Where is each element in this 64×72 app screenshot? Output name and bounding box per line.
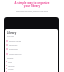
staticText: Shared with me: [9, 53, 22, 55]
staticText: PLAYLISTS: [7, 35, 15, 37]
staticText: Favourites: [9, 44, 18, 46]
button[interactable]: Recently added: [6, 39, 58, 42]
button[interactable]: Trash: [6, 70, 58, 72]
staticText: Downloads: [9, 48, 18, 50]
staticText: Personal: [8, 65, 15, 67]
staticText: FOLDERS: [7, 57, 14, 59]
staticText: Library: [7, 31, 17, 35]
button[interactable]: Personal: [6, 64, 58, 67]
staticText: Archive: [8, 68, 14, 70]
staticText: A simple way to organize: [0, 1, 64, 5]
staticText: Recently added: [9, 40, 22, 42]
button[interactable]: Favourites: [6, 43, 58, 46]
button[interactable]: Downloads: [6, 47, 58, 50]
staticText: your library: [0, 4, 64, 8]
button[interactable]: Work: [6, 60, 58, 63]
button[interactable]: Archive: [6, 67, 58, 70]
staticText: Work: [8, 61, 12, 63]
staticText: Everything you keep, neatly in one place: [0, 10, 64, 12]
button[interactable]: Shared with me: [6, 52, 58, 55]
